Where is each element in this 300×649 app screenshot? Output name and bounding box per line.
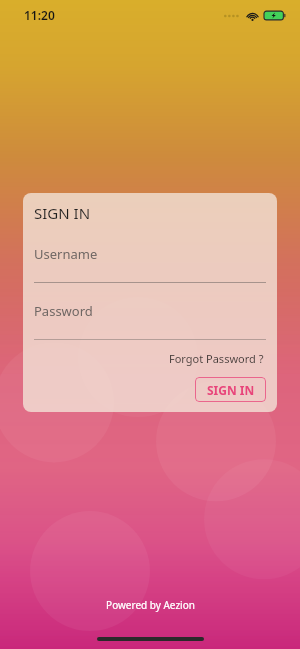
staticText: SIGN IN: [34, 203, 91, 223]
staticText: SIGN IN: [207, 382, 255, 398]
staticText: 11:20: [24, 7, 55, 23]
button[interactable]: SIGN IN: [195, 377, 266, 402]
button[interactable]: Username: [34, 245, 266, 283]
button[interactable]: Forgot Password ?: [167, 349, 266, 368]
staticText: Username: [34, 245, 98, 263]
staticText: Forgot Password ?: [169, 351, 264, 366]
staticText: Powered by Aezion: [106, 598, 195, 612]
button[interactable]: Password: [34, 302, 266, 340]
staticText: Password: [34, 302, 93, 320]
